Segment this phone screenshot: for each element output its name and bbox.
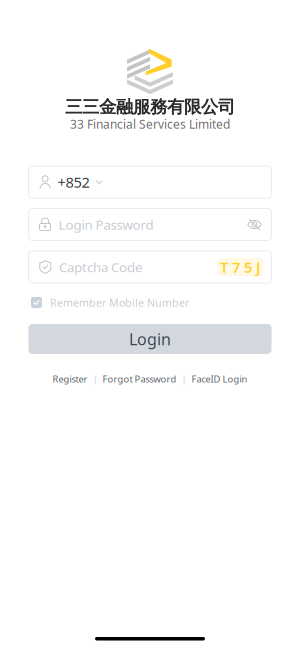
staticText: 33 Financial Services Limited xyxy=(70,116,230,132)
button[interactable]: Remember Mobile Number xyxy=(31,296,269,309)
button[interactable]: Register xyxy=(52,373,87,385)
staticText: FaceID Login xyxy=(191,373,247,385)
staticText: Login Password xyxy=(58,216,153,233)
staticText: Register xyxy=(52,373,87,385)
staticText: +852 xyxy=(57,172,89,192)
button[interactable]: Show password xyxy=(241,209,267,239)
staticText: Forgot Password xyxy=(102,373,176,385)
staticText: Remember Mobile Number xyxy=(50,295,189,310)
staticText: T 7 5 J xyxy=(220,257,261,277)
button[interactable]: T 7 5 J xyxy=(217,258,263,276)
button[interactable]: Login xyxy=(28,324,271,354)
button[interactable]: Forgot Password xyxy=(102,373,176,385)
staticText: | xyxy=(181,373,186,385)
staticText: | xyxy=(92,373,97,385)
button[interactable]: FaceID Login xyxy=(191,373,247,385)
staticText: Login xyxy=(129,328,171,350)
staticText: Captcha Code xyxy=(59,258,143,276)
staticText: 三三金融服務有限公司 xyxy=(65,96,235,118)
